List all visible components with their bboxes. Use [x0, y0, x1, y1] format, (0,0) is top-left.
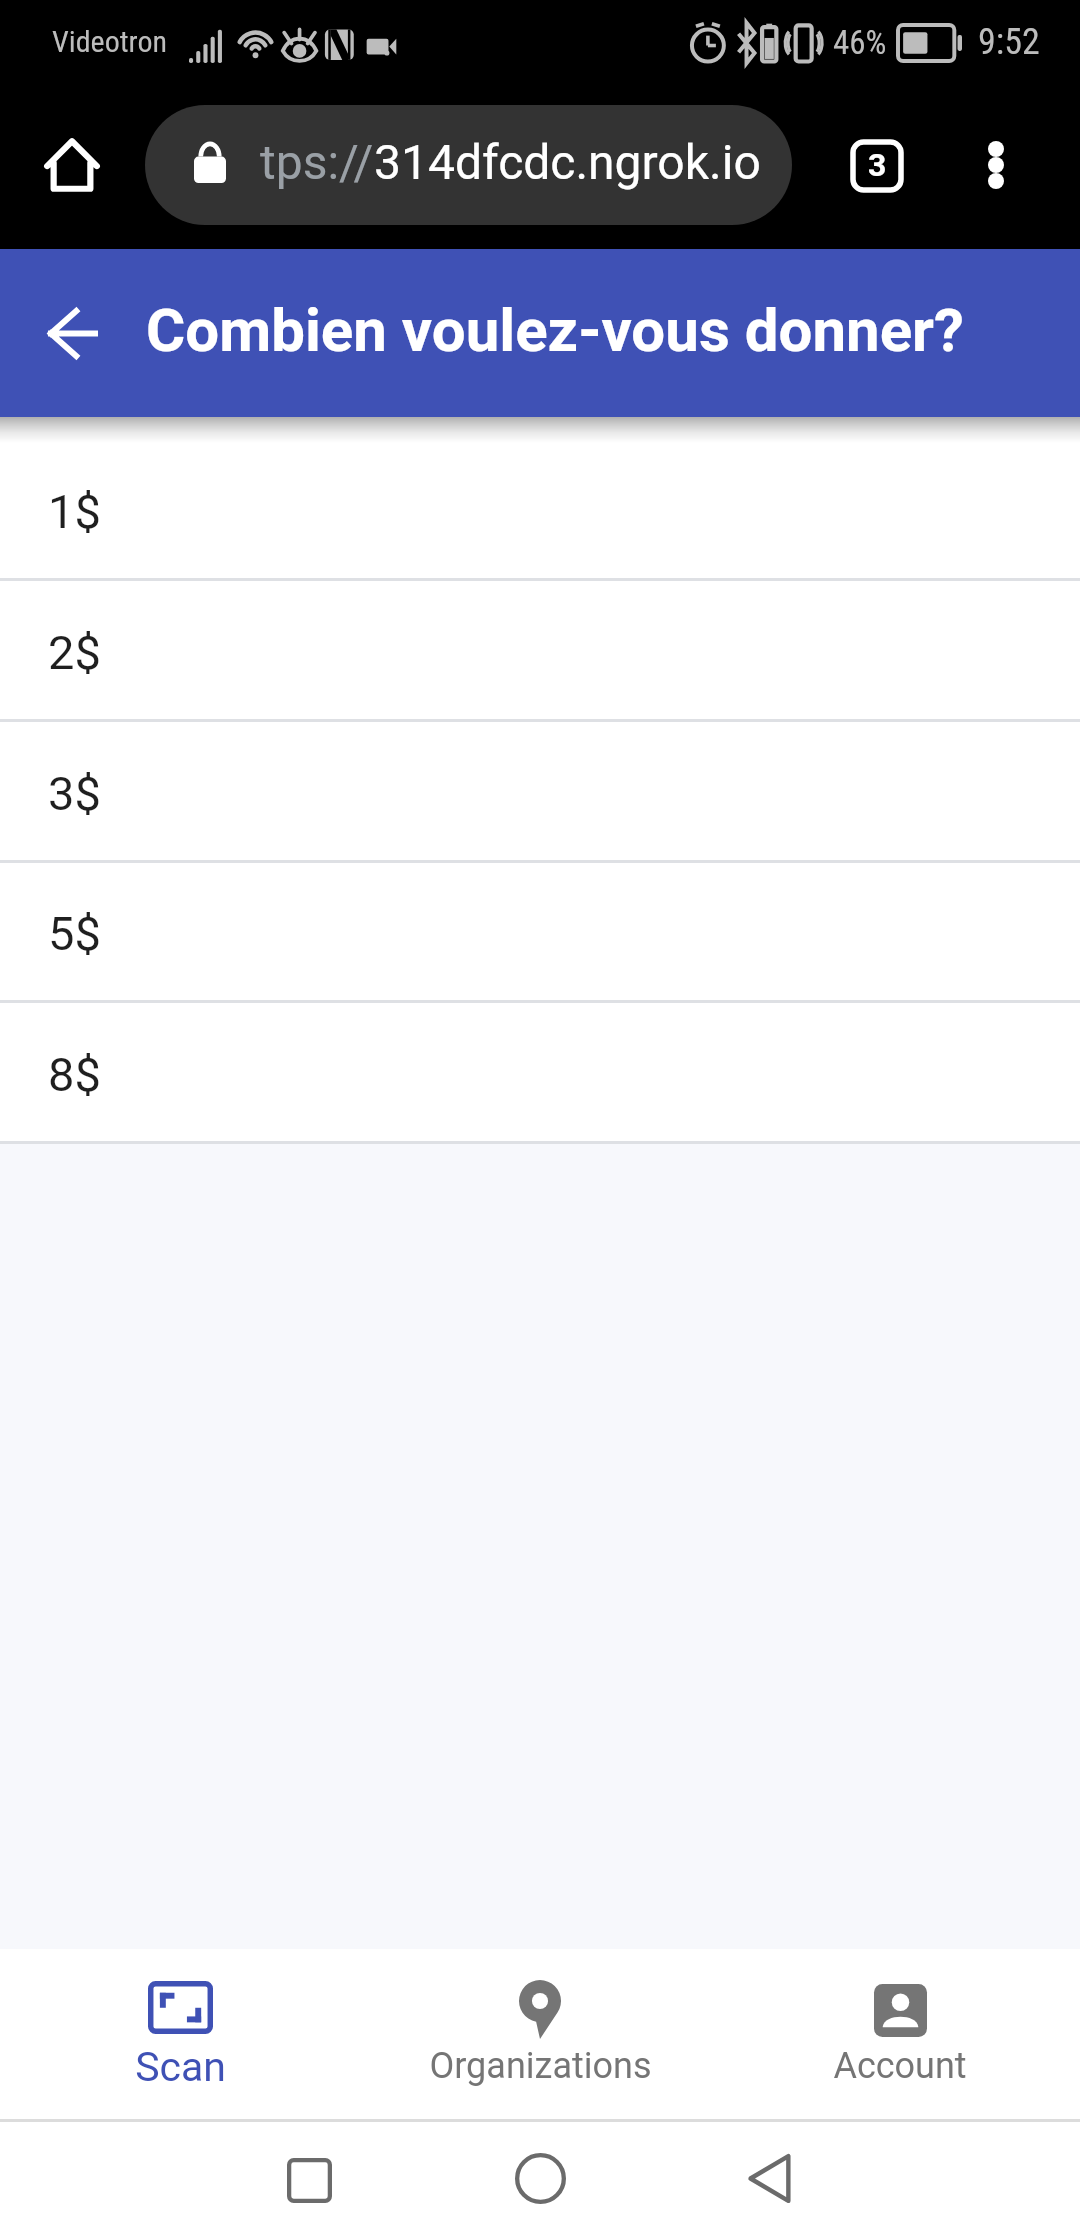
staticText: 5$: [48, 906, 101, 961]
staticText: Combien voulez-vous donner?: [146, 295, 964, 365]
staticText: 46%: [833, 23, 887, 62]
button[interactable]: Organizations: [360, 1949, 720, 2119]
staticText: Organizations: [429, 2045, 652, 2087]
button[interactable]: 5$: [0, 862, 1080, 1003]
button[interactable]: 1$: [0, 440, 1080, 581]
button[interactable]: Home: [490, 2128, 590, 2228]
staticText: 3$: [48, 766, 101, 821]
button[interactable]: Account: [720, 1949, 1080, 2119]
staticText: Scan: [135, 2043, 226, 2091]
staticText: 8$: [48, 1047, 101, 1102]
staticText: 2$: [48, 625, 101, 680]
button[interactable]: Recents: [259, 2130, 359, 2230]
button[interactable]: Scan: [0, 1949, 360, 2119]
button[interactable]: 2$: [0, 581, 1080, 722]
staticText: 314dfcdc.ngrok.io: [374, 134, 761, 190]
button[interactable]: 8$: [0, 1003, 1080, 1144]
staticText: 1$: [48, 484, 101, 539]
staticText: 9:52: [978, 21, 1040, 63]
staticText: Videotron: [52, 24, 168, 59]
staticText: Account: [833, 2045, 967, 2087]
button[interactable]: Back: [40, 301, 104, 365]
button[interactable]: 3$: [0, 722, 1080, 863]
button[interactable]: tps://: [145, 105, 792, 225]
button[interactable]: Back: [719, 2128, 819, 2228]
button[interactable]: Tabs: [843, 132, 911, 200]
staticText: tps://: [260, 134, 374, 190]
staticText: 3: [868, 146, 887, 184]
button[interactable]: More options: [962, 131, 1030, 199]
button[interactable]: Home: [40, 133, 104, 197]
